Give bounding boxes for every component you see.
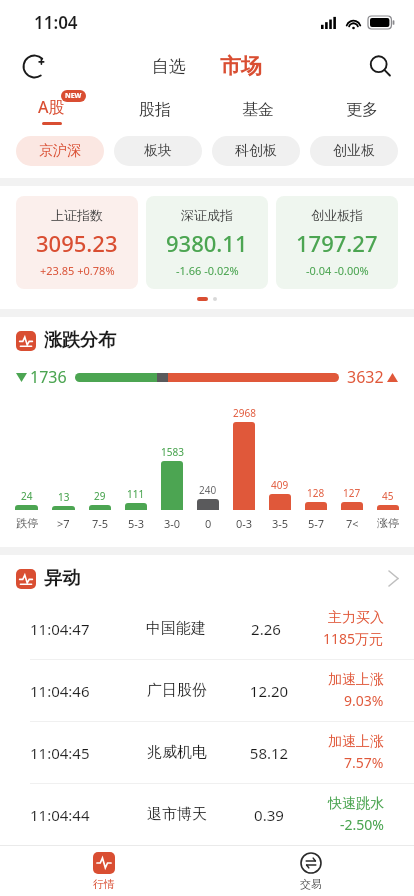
staticText: 广日股份: [147, 681, 213, 700]
button[interactable]: 科创板: [212, 136, 300, 166]
staticText: 涨跌分布: [44, 329, 116, 352]
staticText: +23.85 +0.78%: [40, 263, 115, 278]
staticText: 退市博天: [147, 805, 213, 824]
staticText: -1.66 -0.02%: [176, 263, 239, 278]
staticText: 111: [127, 487, 145, 501]
staticText: 9380.11: [166, 228, 248, 258]
staticText: 3095.23: [36, 228, 118, 258]
staticText: 兆威机电: [147, 743, 213, 762]
staticText: -2.50%: [340, 815, 384, 834]
staticText: 科创板: [235, 142, 277, 160]
staticText: -0.04 -0.00%: [306, 263, 369, 278]
staticText: 中国能建: [146, 619, 212, 638]
staticText: 加速上涨: [328, 671, 384, 689]
staticText: 11:04: [34, 11, 78, 34]
staticText: 5-3: [128, 516, 145, 531]
staticText: 上证指数: [51, 207, 103, 223]
staticText: 3-0: [164, 516, 181, 531]
button[interactable]: 11:04:45: [0, 722, 414, 783]
staticText: 24: [21, 489, 33, 503]
staticText: 1583: [161, 445, 184, 459]
staticText: 深证成指: [181, 207, 233, 223]
button[interactable]: 创业板: [310, 136, 398, 166]
staticText: 创业板: [333, 142, 375, 160]
staticText: 3632: [347, 366, 384, 388]
staticText: 5-7: [308, 516, 325, 531]
staticText: 13: [58, 490, 70, 504]
staticText: 1736: [30, 366, 67, 388]
staticText: 11:04:45: [30, 743, 116, 763]
staticText: 0.39: [245, 805, 293, 825]
staticText: 58.12: [245, 743, 293, 763]
button[interactable]: Search: [360, 46, 400, 86]
staticText: 9.03%: [344, 691, 384, 710]
staticText: 7-5: [92, 516, 109, 531]
button[interactable]: 板块: [114, 136, 202, 166]
staticText: 1797.27: [296, 228, 378, 258]
button[interactable]: 自选: [142, 52, 196, 81]
staticText: 快速跳水: [328, 795, 384, 813]
button[interactable]: 市场: [210, 49, 272, 83]
staticText: 0-3: [236, 516, 253, 531]
staticText: A股: [38, 96, 65, 118]
staticText: 创业板指: [311, 207, 363, 223]
staticText: 11:04:47: [30, 619, 116, 639]
staticText: 29: [94, 489, 106, 503]
button[interactable]: 交易: [207, 846, 414, 896]
staticText: NEW: [65, 91, 82, 101]
staticText: 0: [205, 516, 212, 531]
staticText: 涨停: [377, 516, 399, 530]
staticText: 板块: [144, 142, 172, 160]
staticText: 京沪深: [39, 142, 81, 160]
staticText: 409: [271, 478, 289, 492]
button[interactable]: 深证成指: [146, 196, 268, 289]
button[interactable]: 股指: [103, 88, 206, 132]
staticText: 3-5: [272, 516, 289, 531]
staticText: 跌停: [16, 516, 38, 530]
button[interactable]: 11:04:44: [0, 784, 414, 845]
button[interactable]: Night mode: [14, 46, 54, 86]
staticText: 更多: [346, 100, 378, 120]
button[interactable]: 11:04:46: [0, 660, 414, 721]
button[interactable]: 京沪深: [16, 136, 104, 166]
button[interactable]: 创业板指: [276, 196, 398, 289]
button[interactable]: 更多: [310, 88, 414, 132]
staticText: 12.20: [245, 681, 293, 701]
staticText: 11:04:44: [30, 805, 116, 825]
button[interactable]: A股: [0, 88, 103, 132]
button[interactable]: 上证指数: [16, 196, 138, 289]
staticText: 127: [343, 486, 361, 500]
staticText: 128: [307, 486, 325, 500]
staticText: 异动: [44, 567, 80, 590]
staticText: 基金: [242, 100, 274, 120]
staticText: 加速上涨: [328, 733, 384, 751]
staticText: 市场: [220, 53, 262, 79]
staticText: 2.26: [242, 619, 290, 639]
staticText: 自选: [152, 56, 186, 77]
staticText: 主力买入: [328, 609, 384, 627]
staticText: 行情: [93, 877, 115, 891]
staticText: 1185万元: [323, 629, 384, 648]
staticText: 11:04:46: [30, 681, 116, 701]
staticText: 2968: [233, 406, 256, 420]
staticText: 240: [199, 483, 217, 497]
staticText: 股指: [139, 100, 171, 120]
button[interactable]: 11:04:47: [0, 598, 414, 659]
staticText: 7.57%: [344, 753, 384, 772]
staticText: >7: [57, 516, 70, 531]
staticText: 45: [382, 489, 394, 503]
staticText: 7<: [346, 516, 359, 531]
staticText: 交易: [300, 877, 322, 891]
button[interactable]: 基金: [206, 88, 310, 132]
button[interactable]: 异动: [0, 555, 414, 598]
button[interactable]: 行情: [0, 846, 207, 896]
